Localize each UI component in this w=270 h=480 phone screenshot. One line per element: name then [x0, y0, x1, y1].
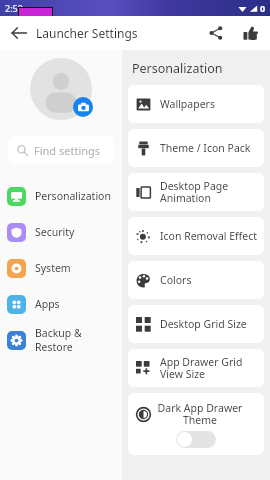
staticText: 0 [260, 2, 266, 14]
button[interactable]: Rate this app [238, 21, 262, 45]
button[interactable]: Personalization [0, 178, 122, 214]
staticText: Icon Removal Effect [160, 229, 258, 243]
button[interactable]: App Drawer Grid View Size [128, 349, 264, 387]
staticText: System [35, 261, 71, 275]
button[interactable]: Theme / Icon Pack [128, 129, 264, 167]
button[interactable]: System [0, 250, 122, 286]
staticText: Dark App Drawer Theme [151, 401, 249, 427]
staticText: Personalization [35, 189, 111, 203]
button[interactable]: Icon Removal Effect [128, 217, 264, 255]
button[interactable]: Dark App Drawer Theme [128, 393, 264, 455]
staticText: Security [35, 225, 75, 239]
staticText: Personalization [132, 60, 223, 77]
button[interactable]: Security [0, 214, 122, 250]
button[interactable]: Find settings [8, 136, 114, 164]
button[interactable]: Desktop Grid Size [128, 305, 264, 343]
button[interactable]: Share [204, 21, 228, 45]
staticText: Wallpapers [160, 97, 215, 111]
button[interactable]: Desktop Page Animation [128, 173, 264, 211]
staticText: Apps [35, 297, 60, 311]
button[interactable]: Back [6, 20, 32, 46]
button[interactable]: Colors [128, 261, 264, 299]
staticText: Backup & Restore [35, 326, 122, 354]
button[interactable]: Apps [0, 286, 122, 322]
button[interactable]: Change photo [73, 97, 93, 117]
staticText: Desktop Grid Size [160, 317, 247, 331]
staticText: 2:59 [5, 2, 23, 14]
staticText: Desktop Page Animation [160, 179, 229, 205]
staticText: Theme / Icon Pack [160, 141, 251, 155]
staticText: App Drawer Grid View Size [160, 355, 243, 381]
button[interactable]: Backup & Restore [0, 322, 122, 358]
staticText: Find settings [34, 143, 101, 158]
button[interactable]: Dark App Drawer Theme toggle [176, 431, 216, 448]
staticText: Colors [160, 273, 192, 287]
button[interactable]: Wallpapers [128, 85, 264, 123]
staticText: Launcher Settings [36, 25, 138, 41]
